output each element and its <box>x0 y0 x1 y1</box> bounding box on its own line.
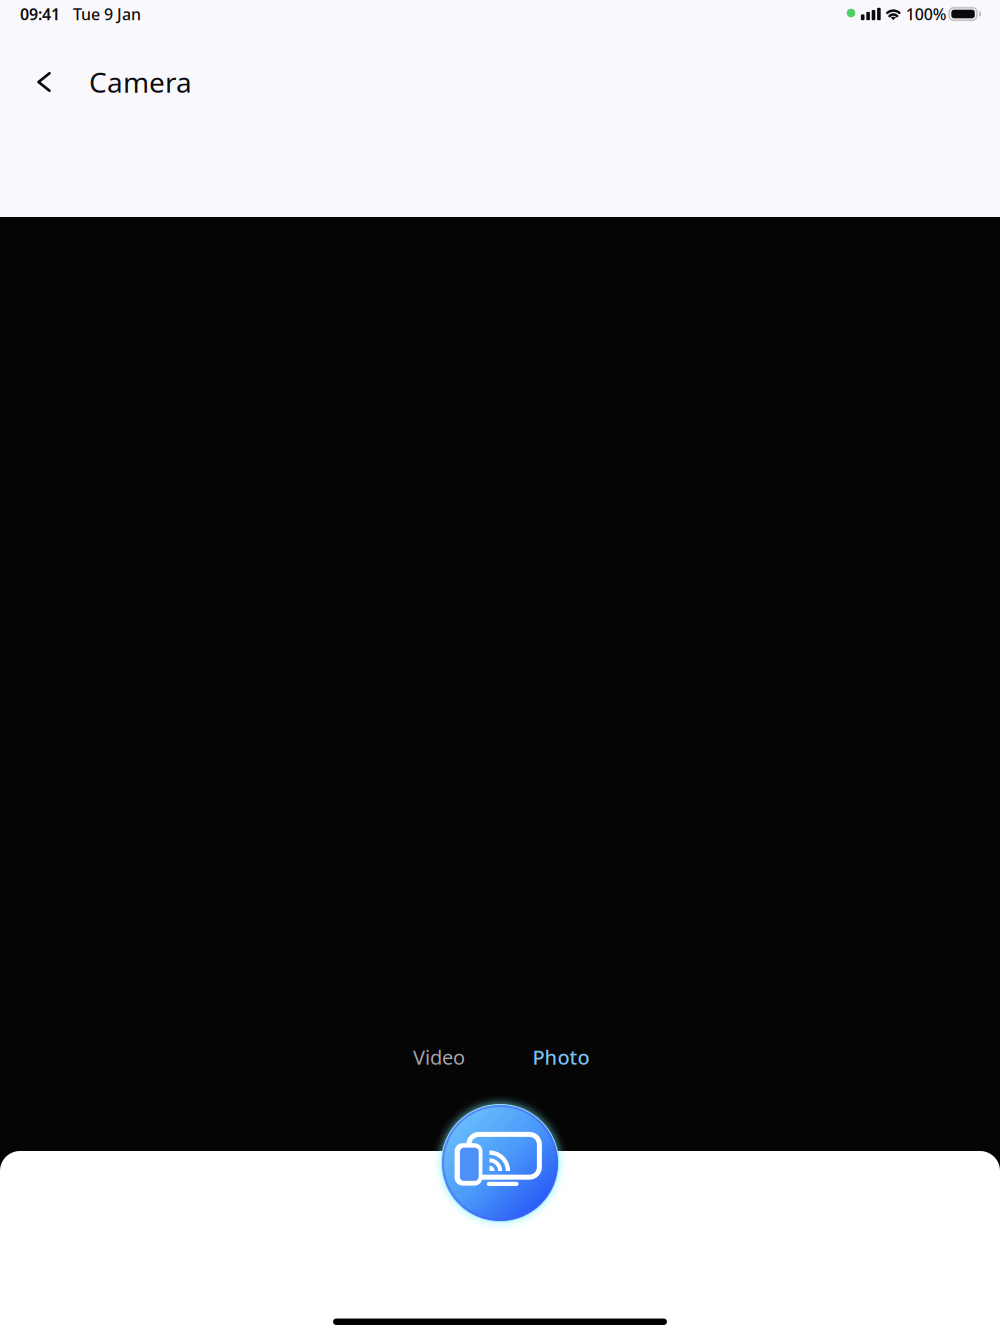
staticText: Photo <box>532 1044 589 1070</box>
button[interactable]: Back <box>18 58 70 106</box>
button[interactable]: Photo <box>524 1040 598 1074</box>
button[interactable]: Screen Mirroring <box>422 1085 578 1241</box>
staticText: Camera <box>89 63 192 101</box>
staticText: Tue 9 Jan <box>73 3 141 25</box>
button[interactable]: Video <box>402 1040 476 1074</box>
staticText: 09:41 <box>20 3 60 25</box>
staticText: Video <box>413 1044 465 1070</box>
staticText: 100% <box>906 3 947 25</box>
